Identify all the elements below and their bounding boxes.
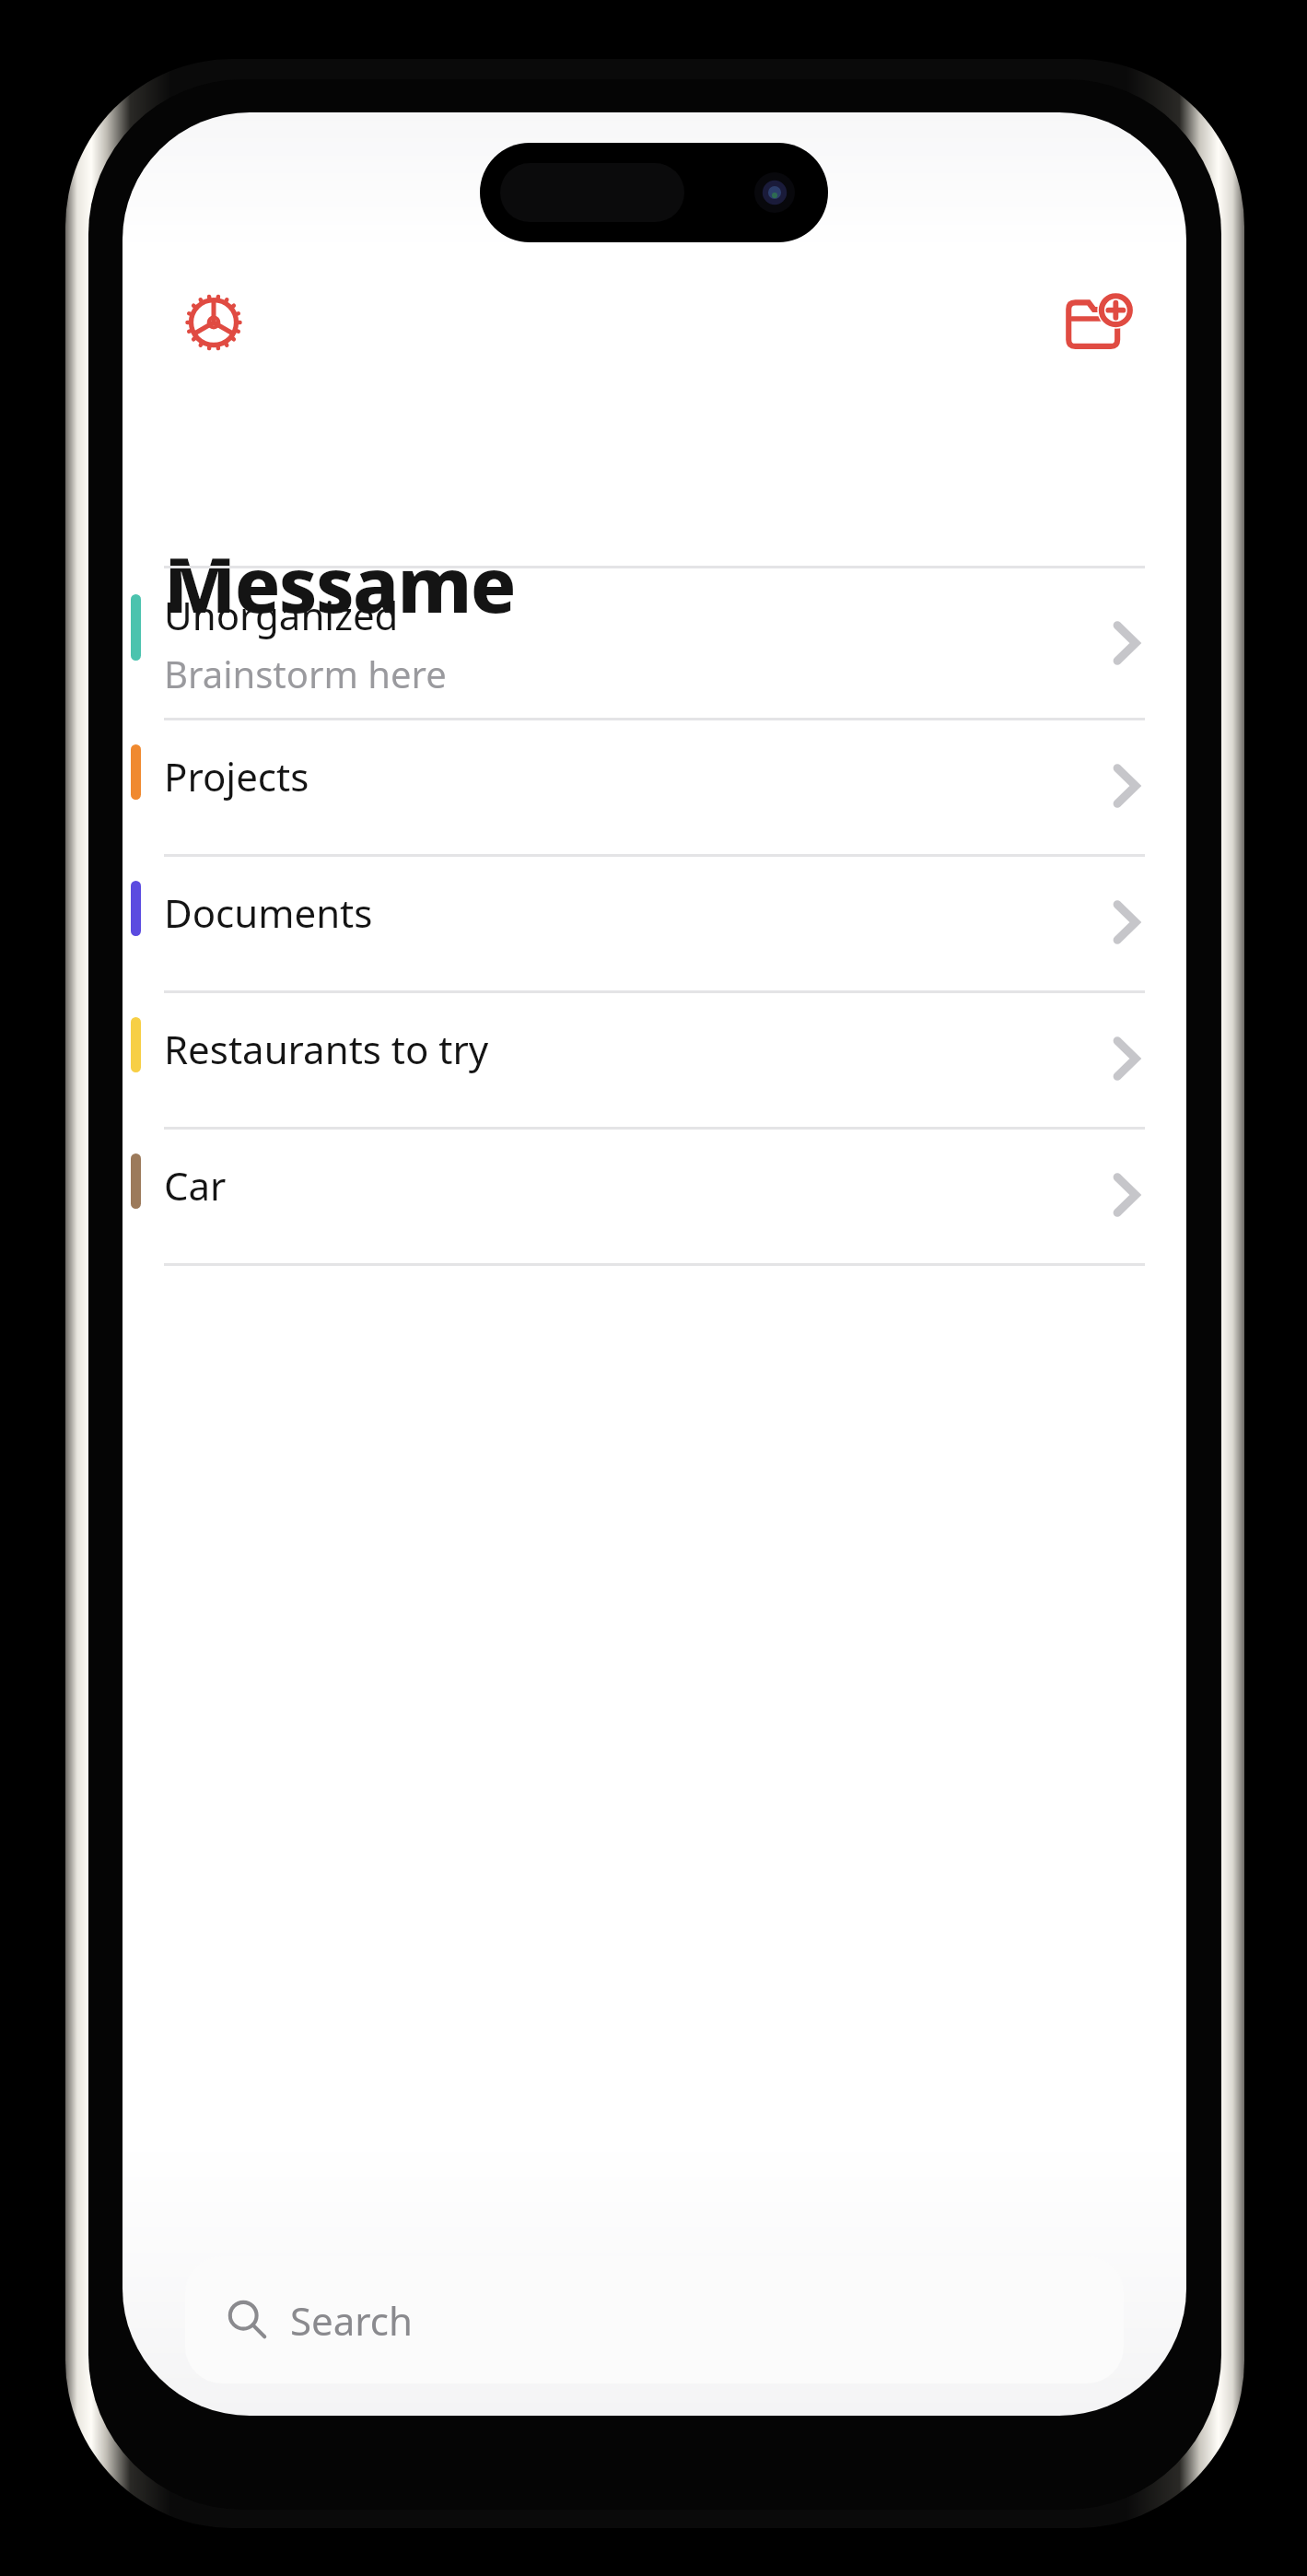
button[interactable]: Settings <box>157 265 271 380</box>
staticText: Restaurants to try <box>164 1023 489 1075</box>
button[interactable]: Restaurants to try <box>123 993 1186 1130</box>
staticText: Documents <box>164 886 373 939</box>
staticText: Brainstorm here <box>164 649 447 698</box>
button[interactable]: Unorganized <box>123 568 1186 720</box>
button[interactable]: Projects <box>123 720 1186 857</box>
staticText: Search <box>290 2294 413 2347</box>
staticText: Unorganized <box>164 589 399 641</box>
staticText: Car <box>164 1159 227 1212</box>
button[interactable]: Search <box>185 2256 1124 2383</box>
staticText: Messame <box>164 532 515 635</box>
button[interactable]: Car <box>123 1130 1186 1266</box>
button[interactable]: New folder <box>1042 265 1156 380</box>
staticText: Projects <box>164 750 309 802</box>
button[interactable]: Documents <box>123 857 1186 993</box>
